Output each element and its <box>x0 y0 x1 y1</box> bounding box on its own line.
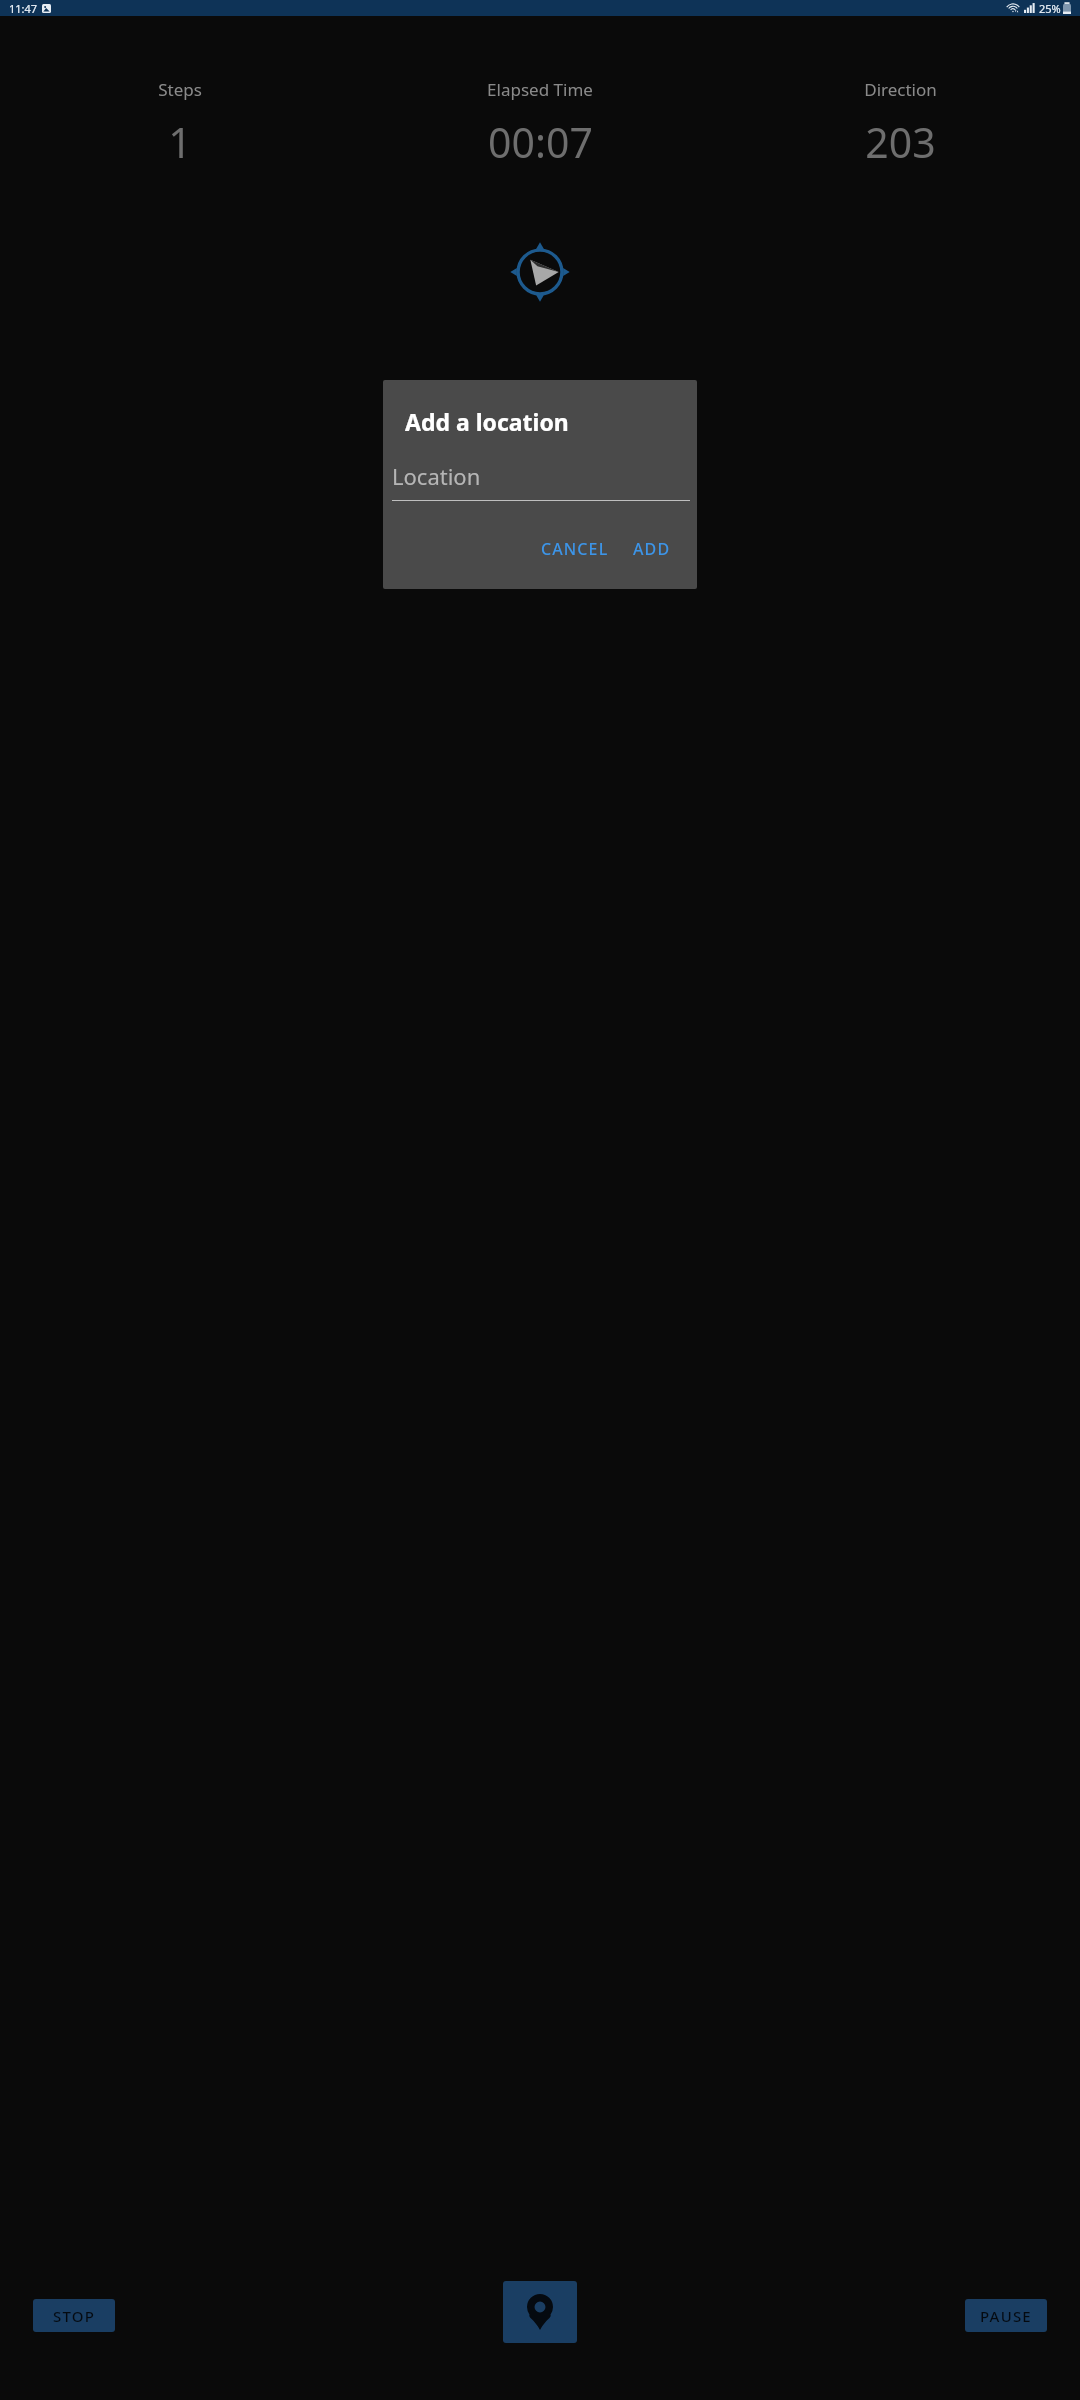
staticText: Location <box>392 461 481 491</box>
staticText: Elapsed Time <box>487 78 593 101</box>
staticText: 00:07 <box>488 114 593 170</box>
staticText: 11:47 <box>9 1 38 16</box>
button[interactable]: CANCEL <box>533 534 617 564</box>
staticText: STOP <box>53 2306 96 2326</box>
staticText: 25% <box>1039 1 1061 16</box>
staticText: 203 <box>865 114 936 170</box>
button[interactable]: STOP <box>33 2299 115 2332</box>
staticText: Direction <box>864 78 937 101</box>
staticText: ADD <box>633 538 671 560</box>
staticText: PAUSE <box>980 2306 1032 2326</box>
button[interactable]: Add a location <box>503 2281 577 2343</box>
button[interactable]: ADD <box>625 534 679 564</box>
button[interactable]: PAUSE <box>965 2299 1047 2332</box>
staticText: Add a location <box>405 406 569 437</box>
staticText: CANCEL <box>541 538 609 560</box>
staticText: 1 <box>168 114 192 170</box>
staticText: Steps <box>158 78 202 101</box>
